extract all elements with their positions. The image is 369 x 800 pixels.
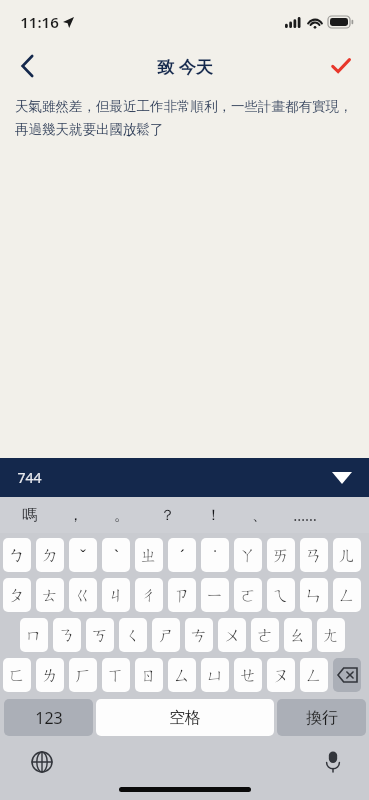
button[interactable]: ㄚ [234, 538, 262, 572]
button[interactable]: ㄧ [201, 578, 229, 612]
button[interactable]: ㄆ [3, 578, 31, 612]
staticText: 致 今天 [157, 55, 213, 78]
button[interactable]: ㄓ [135, 538, 163, 572]
staticText: ！ [206, 506, 221, 525]
button[interactable]: Back [0, 44, 56, 88]
staticText: ？ [160, 506, 175, 525]
button[interactable]: ㄉ [36, 538, 64, 572]
staticText: 空格 [169, 708, 201, 728]
button[interactable]: ㄗ [168, 578, 196, 612]
button[interactable]: ， [52, 497, 98, 533]
button[interactable]: ㄢ [300, 538, 328, 572]
button[interactable]: Dictation [317, 746, 349, 778]
button[interactable]: ㄌ [36, 658, 64, 692]
staticText: 。 [114, 506, 129, 525]
button[interactable]: ㄑ [119, 618, 147, 652]
button[interactable]: 744 [0, 458, 369, 497]
button[interactable]: 嗎 [6, 497, 52, 533]
staticText: ˋ [114, 544, 119, 567]
staticText: ㄑ [124, 625, 142, 646]
button[interactable]: ˊ [168, 538, 196, 572]
staticText: ㄏ [74, 665, 92, 686]
button[interactable]: …… [282, 497, 328, 533]
button[interactable]: 123 [4, 699, 93, 736]
button[interactable]: ㄘ [185, 618, 213, 652]
staticText: ㄊ [41, 585, 59, 606]
button[interactable]: ！ [190, 497, 236, 533]
staticText: ㄟ [272, 585, 290, 606]
button[interactable]: ㄐ [102, 578, 130, 612]
button[interactable]: ㄟ [267, 578, 295, 612]
staticText: ㄠ [289, 625, 307, 646]
staticText: ㄢ [305, 545, 323, 566]
button[interactable]: 換行 [277, 699, 366, 736]
button[interactable]: 空格 [96, 699, 274, 736]
button[interactable]: ㄛ [234, 578, 262, 612]
staticText: ㄔ [140, 585, 158, 606]
button[interactable]: ㄔ [135, 578, 163, 612]
button[interactable]: ˇ [69, 538, 97, 572]
button[interactable]: ㄒ [102, 658, 130, 692]
button[interactable]: ㄏ [69, 658, 97, 692]
staticText: ㄤ [322, 625, 340, 646]
staticText: ㄇ [25, 625, 43, 646]
button[interactable]: Switch keyboard [26, 746, 58, 778]
staticText: ㄈ [8, 665, 26, 686]
button[interactable]: ˋ [102, 538, 130, 572]
staticText: ㄞ [272, 545, 290, 566]
button[interactable]: ㄍ [69, 578, 97, 612]
staticText: ㄨ [223, 625, 241, 646]
staticText: ㄜ [256, 625, 274, 646]
staticText: ㄣ [305, 585, 323, 606]
staticText: ㄥ [338, 585, 356, 606]
staticText: 744 [17, 468, 42, 487]
button[interactable]: ㄋ [53, 618, 81, 652]
button[interactable]: ㄕ [152, 618, 180, 652]
button[interactable]: Done [313, 44, 369, 88]
staticText: ㄛ [239, 585, 257, 606]
button[interactable]: 、 [236, 497, 282, 533]
staticText: …… [293, 505, 317, 525]
staticText: ㄒ [107, 665, 125, 686]
staticText: ㄥ [305, 665, 323, 686]
staticText: ㄉ [41, 545, 59, 566]
button[interactable]: ㄎ [86, 618, 114, 652]
button[interactable]: ㄤ [317, 618, 345, 652]
staticText: ， [68, 506, 83, 525]
staticText: ㄐ [107, 585, 125, 606]
staticText: 123 [35, 707, 63, 729]
button[interactable]: ㄊ [36, 578, 64, 612]
button[interactable]: ㄡ [267, 658, 295, 692]
staticText: ㄕ [157, 625, 175, 646]
button[interactable]: ㄖ [135, 658, 163, 692]
button[interactable]: ㄈ [3, 658, 31, 692]
staticText: 、 [252, 506, 267, 525]
staticText: ㄦ [338, 545, 356, 566]
button[interactable]: ㄜ [251, 618, 279, 652]
staticText: ˙ [213, 544, 217, 567]
staticText: ㄗ [173, 585, 191, 606]
button[interactable]: ㄠ [284, 618, 312, 652]
button[interactable]: Hide keyboard [329, 465, 355, 491]
button[interactable]: ˙ [201, 538, 229, 572]
button[interactable]: ㄦ [333, 538, 361, 572]
staticText: ㄙ [173, 665, 191, 686]
button[interactable]: ㄝ [234, 658, 262, 692]
button[interactable]: ㄞ [267, 538, 295, 572]
button[interactable]: ㄣ [300, 578, 328, 612]
button[interactable]: ㄇ [20, 618, 48, 652]
button[interactable]: ？ [144, 497, 190, 533]
button[interactable]: ㄅ [3, 538, 31, 572]
button[interactable]: Backspace [333, 658, 361, 692]
button[interactable]: ㄨ [218, 618, 246, 652]
button[interactable]: ㄥ [300, 658, 328, 692]
button[interactable]: ㄥ [333, 578, 361, 612]
staticText: ㄆ [8, 585, 26, 606]
staticText: ㄩ [206, 665, 224, 686]
staticText: ㄅ [8, 545, 26, 566]
button[interactable]: ㄙ [168, 658, 196, 692]
button[interactable]: 。 [98, 497, 144, 533]
staticText: ㄖ [140, 665, 158, 686]
staticText: 嗎 [22, 506, 37, 525]
button[interactable]: ㄩ [201, 658, 229, 692]
